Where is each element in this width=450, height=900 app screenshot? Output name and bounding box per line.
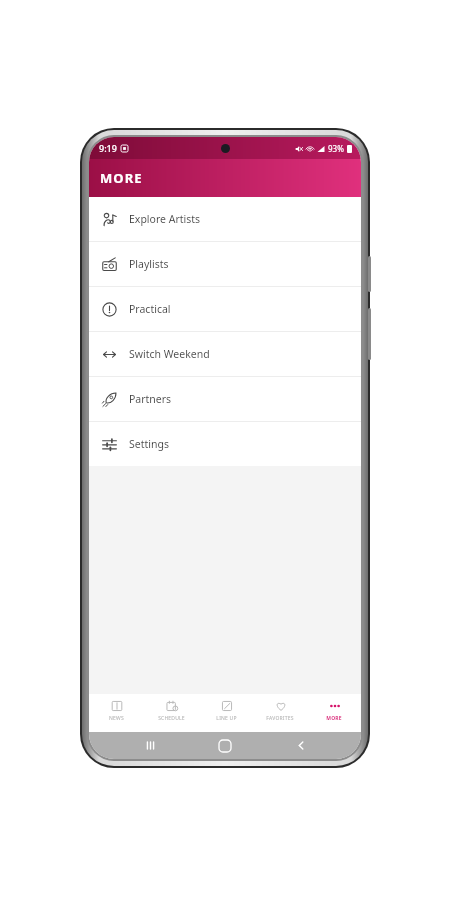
staticText: Settings: [129, 437, 169, 451]
button[interactable]: SCHEDULE: [144, 694, 199, 732]
button[interactable]: FAVORITES: [253, 694, 307, 732]
button[interactable]: NEWS: [89, 694, 144, 732]
staticText: Switch Weekend: [129, 347, 210, 361]
button[interactable]: Settings: [89, 422, 361, 466]
button[interactable]: Switch Weekend: [89, 332, 361, 376]
staticText: MORE: [100, 169, 143, 187]
staticText: LINE UP: [216, 715, 237, 722]
button[interactable]: Home: [210, 732, 240, 759]
button[interactable]: Explore Artists: [89, 197, 361, 241]
staticText: Practical: [129, 302, 171, 316]
staticText: 9:19: [99, 142, 117, 154]
button[interactable]: MORE: [307, 694, 361, 732]
staticText: FAVORITES: [266, 715, 294, 722]
button[interactable]: Partners: [89, 377, 361, 421]
staticText: Explore Artists: [129, 212, 201, 226]
button[interactable]: Recent apps: [135, 732, 165, 759]
staticText: SCHEDULE: [158, 715, 185, 722]
staticText: Partners: [129, 392, 172, 406]
button[interactable]: Back: [286, 732, 316, 759]
staticText: 93%: [328, 143, 344, 154]
staticText: MORE: [326, 715, 342, 722]
button[interactable]: Practical: [89, 287, 361, 331]
staticText: Playlists: [129, 257, 169, 271]
staticText: NEWS: [109, 715, 124, 722]
button[interactable]: Playlists: [89, 242, 361, 286]
button[interactable]: LINE UP: [199, 694, 253, 732]
